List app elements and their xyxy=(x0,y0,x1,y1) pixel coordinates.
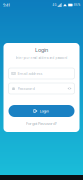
staticText: Login xyxy=(39,108,49,114)
staticText: 4G xyxy=(53,3,57,7)
button[interactable]: Login xyxy=(8,105,74,117)
staticText: Login xyxy=(35,46,48,54)
staticText: 86% xyxy=(74,3,80,7)
staticText: 9:41 xyxy=(3,2,10,8)
staticText: Email address xyxy=(17,71,42,76)
button[interactable]: Forgot Password? xyxy=(23,121,60,126)
staticText: Forgot Password? xyxy=(26,121,57,126)
staticText: Enter your email address and password xyxy=(15,56,67,60)
staticText: Password xyxy=(17,86,34,91)
